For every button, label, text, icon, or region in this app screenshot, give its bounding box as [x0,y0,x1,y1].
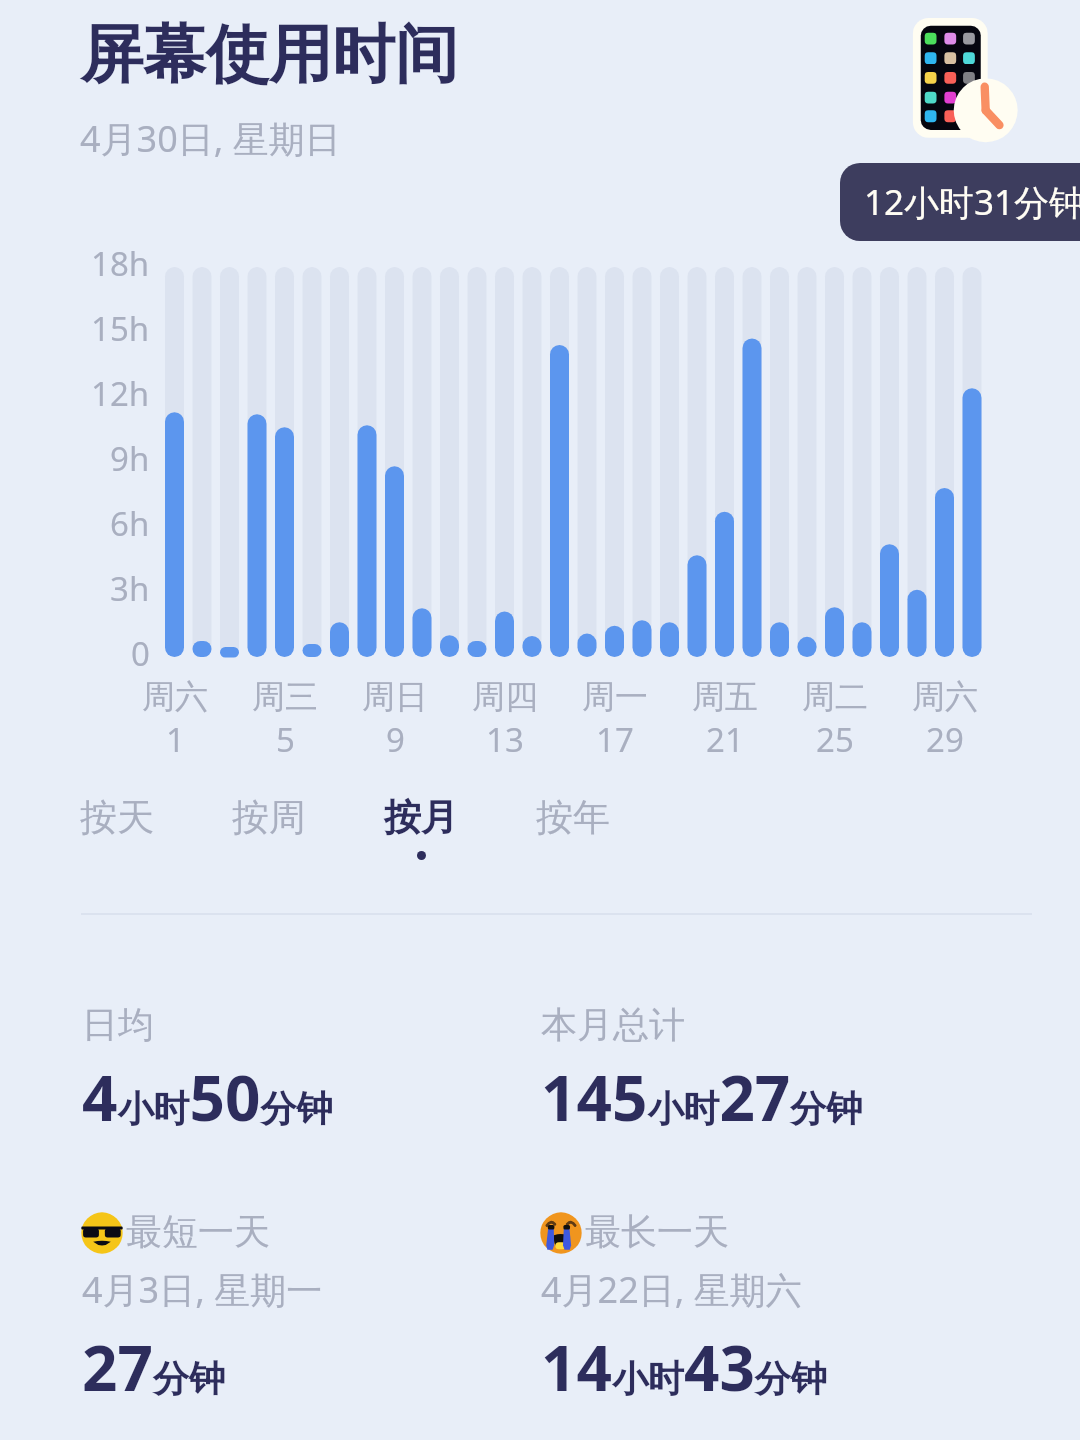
staticText: 按年 [536,794,610,841]
button[interactable]: 最长一天 [539,1205,969,1415]
staticText: 按周 [232,794,306,841]
button[interactable]: 按月 [380,786,520,886]
staticText: 6h [110,501,150,546]
button[interactable]: 按周 [228,786,368,886]
staticText: 0 [131,631,150,676]
staticText: 周三 [252,676,318,718]
button[interactable]: 本月总计 [541,1002,971,1152]
button[interactable]: 按年 [532,786,672,886]
staticText: 4月3日, 星期一 [82,1265,323,1314]
button[interactable]: Daily screen time chart [160,262,988,662]
staticText: 周五 [692,676,758,718]
staticText: 18h [91,241,150,286]
staticText: 27分钟 [82,1325,225,1409]
staticText: 周四 [472,676,538,718]
button[interactable]: Screen time [908,12,1026,130]
staticText: 周日 [362,676,428,718]
staticText: 145小时27分钟 [541,1055,863,1139]
staticText: 13 [486,717,524,762]
staticText: 周一 [582,676,648,718]
staticText: 周二 [802,676,868,718]
staticText: 15h [91,306,150,351]
button[interactable]: 按天 [76,786,216,886]
staticText: 12小时31分钟 [864,178,1080,226]
staticText: 4月30日, 星期日 [80,114,341,163]
staticText: 按月 [384,794,458,841]
button[interactable]: 12小时31分钟 [840,163,1080,241]
staticText: 本月总计 [541,1002,685,1047]
staticText: 5 [276,717,295,762]
staticText: 4月22日, 星期六 [541,1265,802,1314]
staticText: 日均 [82,1002,154,1047]
staticText: 14小时43分钟 [541,1325,827,1409]
staticText: 1 [166,717,185,762]
staticText: 最长一天 [585,1209,729,1254]
staticText: 3h [110,566,150,611]
staticText: 周六 [912,676,978,718]
staticText: 21 [706,717,744,762]
button[interactable]: 最短一天 [80,1205,510,1415]
staticText: 按天 [80,794,154,841]
staticText: 最短一天 [126,1209,270,1254]
button[interactable]: 日均 [82,1002,512,1152]
staticText: 17 [596,717,634,762]
staticText: 周六 [142,676,208,718]
staticText: 9h [110,436,150,481]
staticText: 屏幕使用时间 [80,15,458,94]
staticText: 25 [816,717,854,762]
staticText: 12h [91,371,150,416]
staticText: 4小时50分钟 [82,1055,333,1139]
staticText: 29 [926,717,964,762]
staticText: 9 [386,717,405,762]
